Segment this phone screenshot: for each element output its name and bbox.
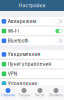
staticText: Настр.	[35, 93, 45, 97]
button[interactable]: Авиарежим	[0, 17, 64, 26]
staticText: Уведомления	[8, 52, 41, 57]
button[interactable]: Bluetooth	[0, 36, 64, 45]
staticText: Управление	[8, 81, 38, 86]
button[interactable]: Уведомления	[0, 50, 64, 59]
staticText: VPN	[8, 71, 17, 77]
staticText: Товары	[18, 93, 30, 97]
staticText: Настройки	[18, 3, 45, 8]
button[interactable]: Профиль	[48, 88, 64, 97]
button[interactable]: VPN	[0, 69, 64, 78]
button[interactable]: Пункт управления	[0, 60, 64, 68]
staticText: Пункт управления	[8, 61, 52, 67]
staticText: Профиль	[49, 93, 63, 97]
button[interactable]: Товары	[16, 88, 32, 97]
button[interactable]: Главная	[0, 88, 16, 97]
staticText: Bluetooth	[8, 38, 29, 43]
button[interactable]: Wi-Fi	[0, 27, 64, 35]
button[interactable]: Управление	[0, 79, 64, 88]
staticText: Главная	[1, 93, 15, 97]
button[interactable]: Настр.	[32, 88, 48, 97]
staticText: Авиарежим	[8, 19, 36, 24]
staticText: Wi-Fi	[8, 28, 19, 34]
